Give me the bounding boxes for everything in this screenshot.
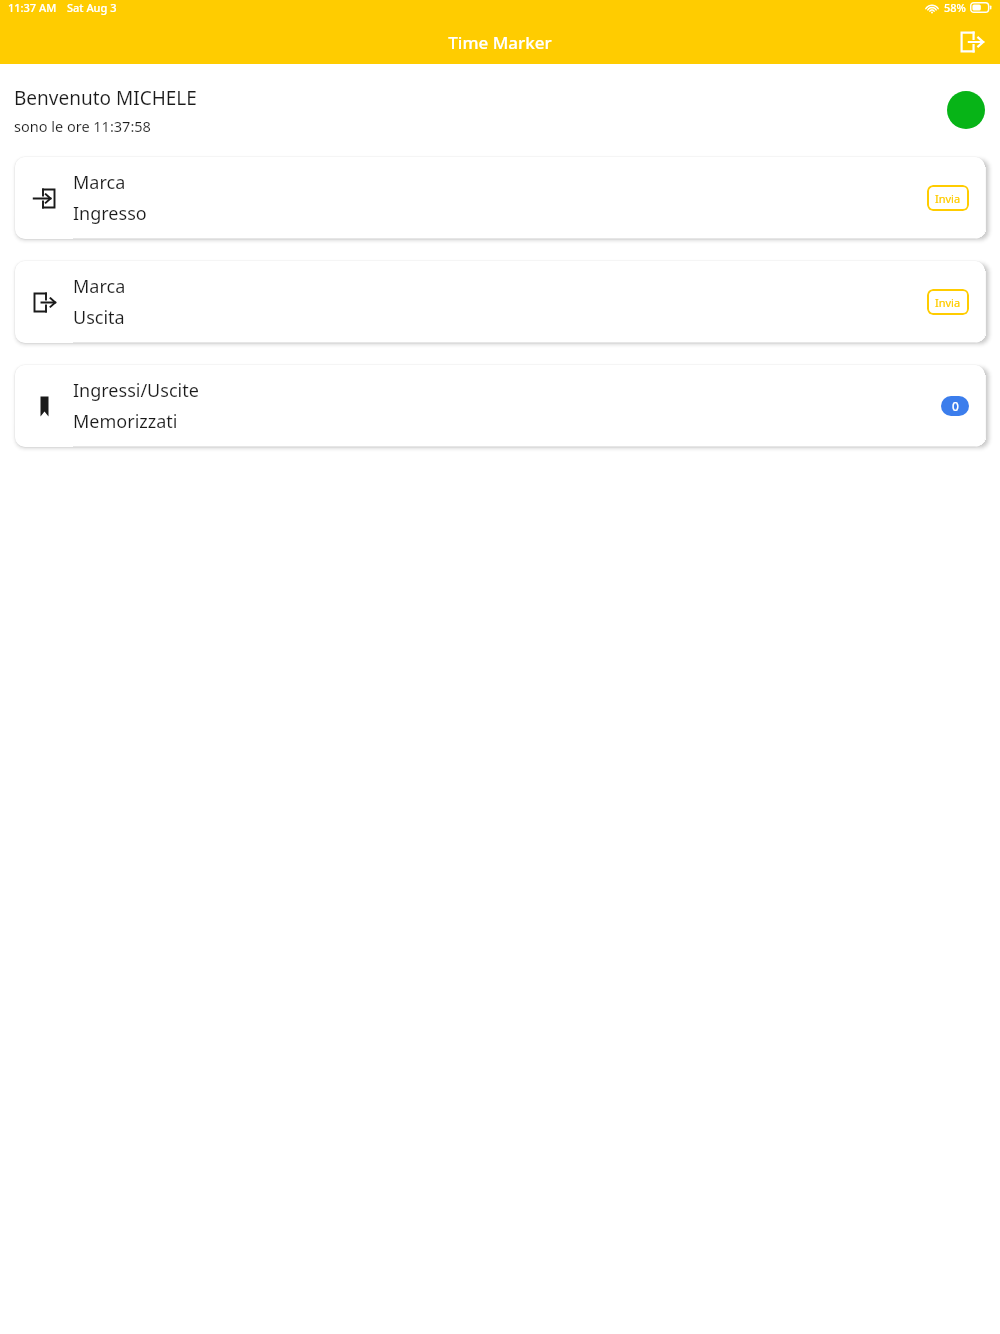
staticText: Marca xyxy=(73,170,126,195)
staticText: 58% xyxy=(944,0,966,15)
staticText: Ingresso xyxy=(73,201,147,226)
button[interactable]: Invia xyxy=(927,289,969,315)
staticText: Time Marker xyxy=(0,31,1000,54)
staticText: Sat Aug 3 xyxy=(67,0,117,15)
staticText: sono le ore 11:37:58 xyxy=(14,116,151,136)
staticText: Marca xyxy=(73,274,126,299)
button[interactable]: Marca xyxy=(15,261,985,343)
staticText: 0 xyxy=(952,398,959,414)
staticText: 11:37 AM xyxy=(8,0,57,15)
staticText: Invia xyxy=(935,191,961,206)
button[interactable]: Invia xyxy=(927,185,969,211)
button[interactable]: Ingressi/Uscite xyxy=(15,365,985,447)
button[interactable]: Marca xyxy=(15,157,985,239)
staticText: Benvenuto MICHELE xyxy=(14,85,197,111)
staticText: Invia xyxy=(935,295,961,310)
staticText: Uscita xyxy=(73,305,125,330)
staticText: Ingressi/Uscite xyxy=(73,378,199,403)
button[interactable]: 0 xyxy=(941,396,969,416)
staticText: Memorizzati xyxy=(73,409,178,434)
button[interactable]: Logout xyxy=(950,20,994,64)
button[interactable]: Connection status: online xyxy=(947,91,985,129)
